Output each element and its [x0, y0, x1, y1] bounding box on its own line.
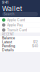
staticText: $40	[32, 44, 38, 48]
button[interactable]: Details	[0, 48, 40, 52]
button[interactable]: Latest	[0, 40, 40, 44]
staticText: 9:41	[2, 0, 8, 5]
staticText: Wallet	[2, 4, 22, 13]
button[interactable]: Apple Pay	[0, 22, 40, 27]
staticText: Apple Pay	[7, 23, 23, 27]
button[interactable]: Pending	[0, 44, 40, 48]
button[interactable]: Balance	[0, 36, 40, 40]
button[interactable]: Apple Card	[0, 17, 40, 22]
staticText: RECENT	[2, 33, 14, 36]
staticText: $12	[33, 40, 38, 44]
staticText: Apple Card	[7, 18, 25, 22]
staticText: Latest	[2, 40, 12, 44]
staticText: Search	[4, 12, 15, 16]
button[interactable]: Transit Card	[0, 27, 40, 32]
staticText: Transit Card	[7, 28, 27, 32]
staticText: Pending	[2, 44, 15, 48]
staticText: Details	[2, 48, 14, 52]
staticText: Balance	[2, 36, 15, 40]
